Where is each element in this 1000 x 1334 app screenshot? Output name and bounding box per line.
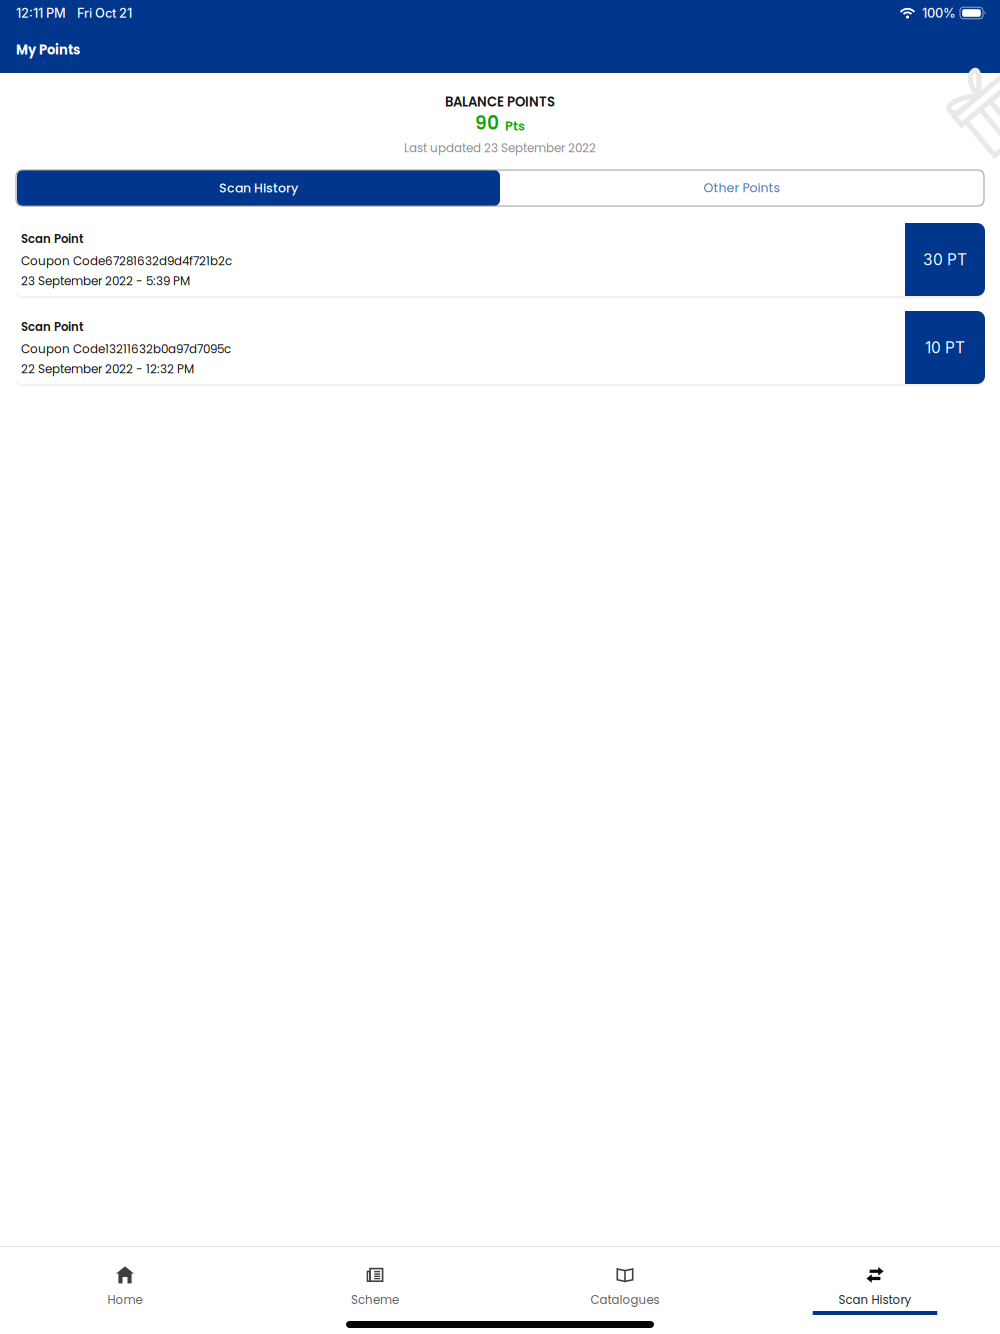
staticText: Catalogues — [590, 1292, 659, 1308]
staticText: Other Points — [703, 179, 779, 197]
button[interactable]: Other Points — [500, 170, 983, 206]
staticText: Last updated 23 September 2022 — [404, 140, 596, 156]
staticText: Coupon Code13211632b0a97d7095c — [21, 341, 231, 357]
staticText: Scan History — [219, 179, 298, 197]
button[interactable]: Scheme — [250, 1247, 500, 1321]
staticText: Fri Oct 21 — [77, 5, 132, 21]
button[interactable]: Catalogues — [500, 1247, 750, 1321]
staticText: Scheme — [351, 1292, 399, 1308]
staticText: Scan Point — [21, 231, 84, 247]
button[interactable]: Scan History — [17, 170, 500, 206]
staticText: 22 September 2022 - 12:32 PM — [21, 361, 194, 377]
button[interactable]: Scan History — [750, 1247, 1000, 1321]
staticText: 100% — [922, 5, 956, 21]
staticText: 12:11 PM — [16, 5, 66, 21]
button[interactable]: Home — [0, 1247, 250, 1321]
staticText: Scan History — [838, 1292, 911, 1308]
staticText: Coupon Code67281632d9d4f721b2c — [21, 253, 232, 269]
staticText: 10 PT — [925, 338, 965, 357]
staticText: Scan Point — [21, 319, 84, 335]
button[interactable]: Scan Point — [0, 311, 1000, 384]
staticText: 23 September 2022 - 5:39 PM — [21, 273, 190, 289]
staticText: 90 — [475, 110, 499, 136]
button[interactable]: Scan Point — [0, 223, 1000, 296]
staticText: My Points — [16, 41, 80, 59]
staticText: Pts — [505, 117, 525, 135]
staticText: BALANCE POINTS — [445, 93, 555, 111]
staticText: Home — [107, 1292, 142, 1308]
staticText: 30 PT — [923, 250, 967, 269]
